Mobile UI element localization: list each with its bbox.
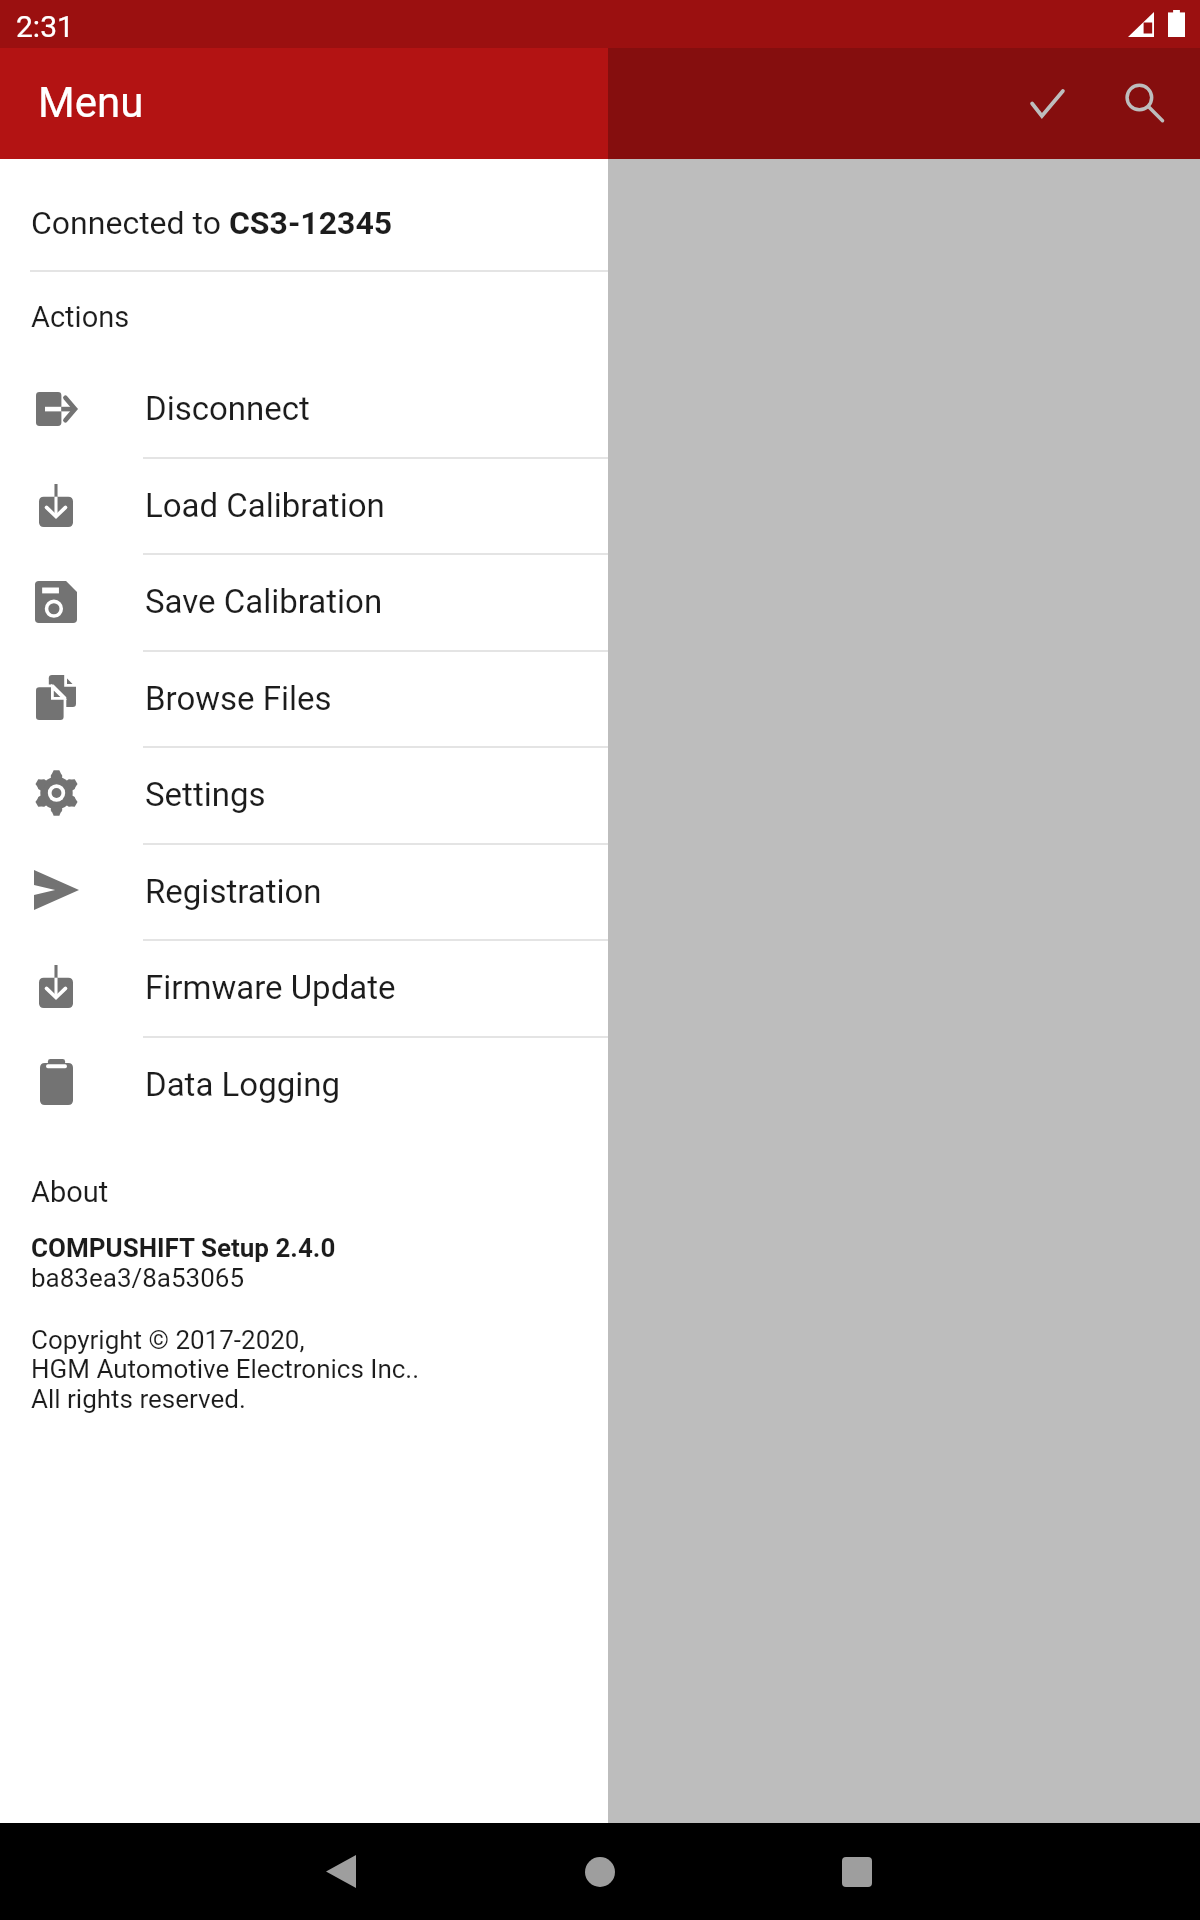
- staticText: Copyright © 2017-2020, HGM Automotive El…: [31, 1325, 420, 1415]
- staticText: Settings: [145, 775, 266, 814]
- button[interactable]: Data Logging: [0, 1036, 608, 1133]
- staticText: Browse Files: [145, 679, 332, 718]
- button[interactable]: Connected to CS3-12345: [0, 159, 608, 270]
- button[interactable]: Disconnect: [0, 360, 608, 457]
- staticText: 2:31: [16, 9, 74, 44]
- staticText: Disconnect: [145, 389, 310, 428]
- button[interactable]: Search: [1096, 48, 1192, 159]
- staticText: Save Calibration: [145, 582, 383, 621]
- staticText: Registration: [145, 872, 322, 911]
- button[interactable]: Back: [292, 1823, 389, 1920]
- button[interactable]: Home: [551, 1823, 648, 1920]
- button[interactable]: Browse Files: [0, 650, 608, 747]
- button[interactable]: Firmware Update: [0, 939, 608, 1036]
- button[interactable]: Settings: [0, 746, 608, 843]
- staticText: Load Calibration: [145, 486, 385, 525]
- staticText: Data Logging: [145, 1065, 340, 1104]
- staticText: Menu: [38, 78, 144, 127]
- staticText: COMPUSHIFT Setup 2.4.0: [31, 1233, 336, 1263]
- staticText: ba83ea3/8a53065: [31, 1263, 245, 1293]
- staticText: Firmware Update: [145, 968, 396, 1007]
- button[interactable]: Save Calibration: [0, 553, 608, 650]
- button[interactable]: Recent apps: [808, 1823, 905, 1920]
- staticText: About: [31, 1175, 109, 1209]
- button[interactable]: Load Calibration: [0, 457, 608, 554]
- staticText: Connected to CS3-12345: [31, 204, 393, 242]
- button[interactable]: Close navigation drawer: [608, 48, 1200, 1823]
- button[interactable]: Accept: [999, 48, 1095, 159]
- button[interactable]: Registration: [0, 843, 608, 940]
- staticText: Actions: [31, 300, 130, 334]
